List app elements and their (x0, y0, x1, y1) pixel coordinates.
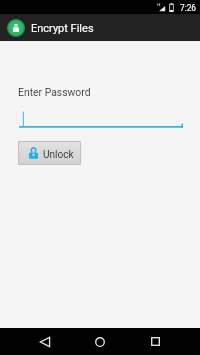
button[interactable]: Recent apps (137, 328, 173, 355)
button[interactable]: Back (27, 328, 63, 355)
button[interactable]: Home (82, 328, 118, 355)
staticText: Enter Password (18, 86, 91, 98)
staticText: Unlock (43, 149, 74, 161)
staticText: Encrypt Files (31, 22, 94, 35)
staticText: 7:26 (180, 3, 196, 13)
button[interactable]: Unlock (18, 141, 81, 165)
button[interactable]: App logo (7, 19, 25, 37)
button[interactable]: Password field (19, 111, 183, 128)
